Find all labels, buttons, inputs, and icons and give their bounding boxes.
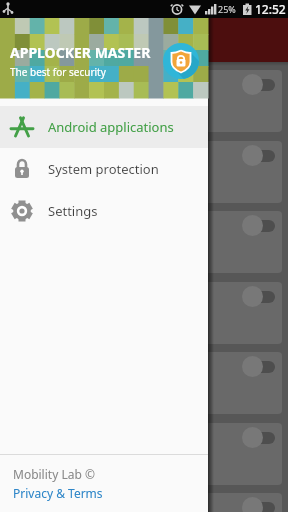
staticText: Android applications [48,118,174,136]
staticText: Privacy & Terms [13,485,103,501]
button[interactable]: Android applications [0,106,208,148]
button[interactable] [6,211,282,273]
button[interactable] [6,141,282,203]
button[interactable] [6,282,282,344]
staticText: 25% [218,3,236,15]
button[interactable] [6,423,282,485]
button[interactable] [6,352,282,414]
staticText: APPLOCKER MASTER [10,43,151,62]
button[interactable] [6,70,282,132]
button[interactable]: System protection [0,148,208,190]
button[interactable] [6,493,282,512]
staticText: System protection [48,160,159,178]
staticText: The best for security [10,65,106,79]
staticText: 12:52 [255,1,286,17]
staticText: Settings [48,202,98,220]
button[interactable]: Settings [0,190,208,232]
button[interactable]: Privacy & Terms [13,482,133,503]
staticText: Mobility Lab © [13,466,95,482]
